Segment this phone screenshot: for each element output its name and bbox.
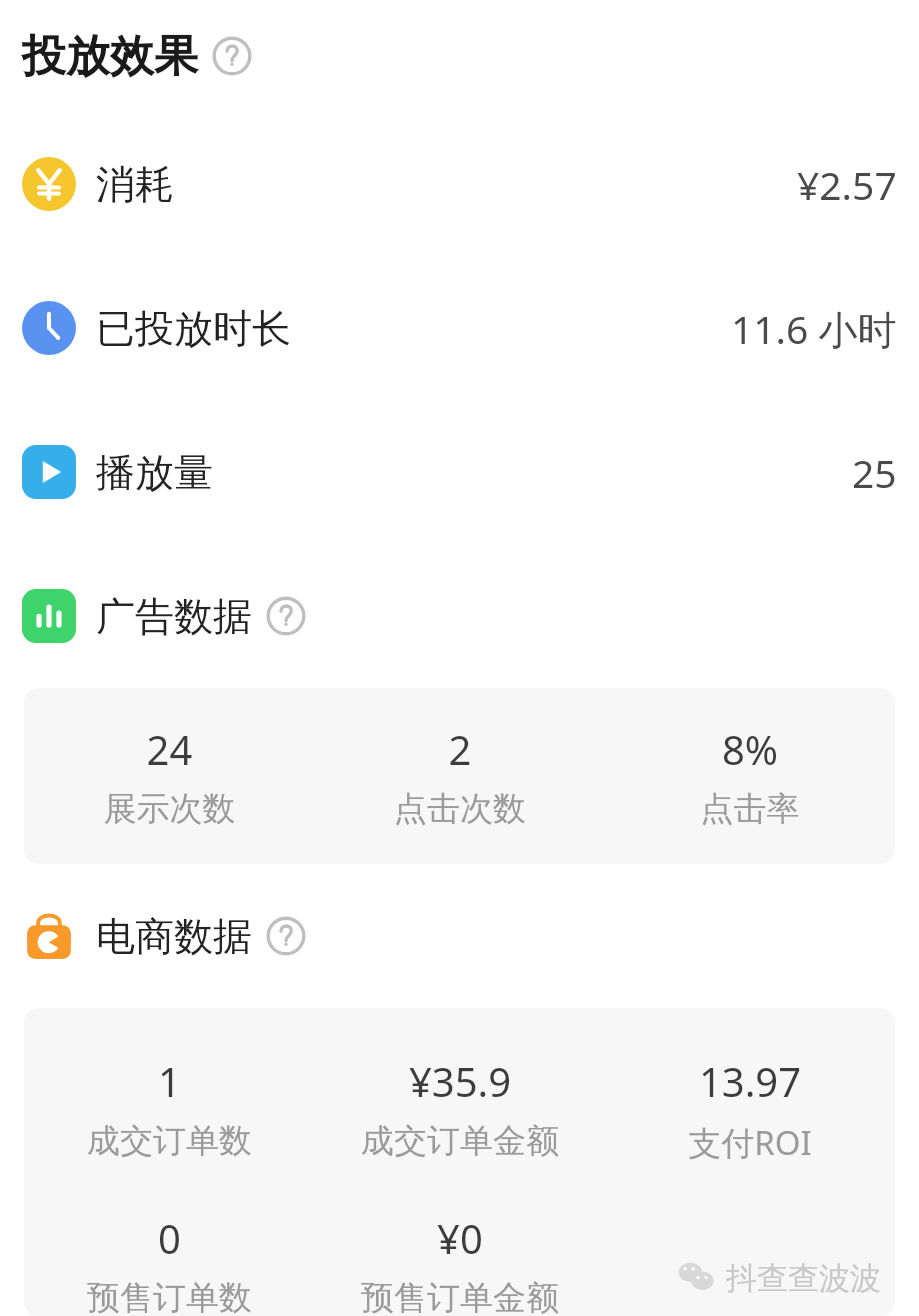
staticText: 24 xyxy=(24,722,315,776)
staticText: 25 xyxy=(852,446,897,499)
staticText: 支付ROI xyxy=(605,1120,895,1165)
staticText: 成交订单数 xyxy=(24,1120,315,1162)
staticText: 点击率 xyxy=(605,788,895,830)
staticText: 预售订单金额 xyxy=(315,1277,605,1316)
staticText: 1 xyxy=(24,1054,315,1108)
staticText: 成交订单金额 xyxy=(315,1120,605,1162)
button[interactable]: 帮助说明 xyxy=(212,36,252,76)
button[interactable]: 电商数据 xyxy=(0,864,919,1008)
staticText: 8% xyxy=(605,722,895,776)
button[interactable]: 帮助说明 xyxy=(266,596,306,636)
button[interactable]: ¥35.9 xyxy=(315,1054,605,1162)
button[interactable]: 已投放时长 xyxy=(0,256,919,400)
button[interactable]: 2 xyxy=(315,722,605,830)
staticText: 广告数据 xyxy=(96,592,252,641)
button[interactable]: 1 xyxy=(24,1054,315,1162)
staticText: 点击次数 xyxy=(315,788,605,830)
button[interactable]: 播放量 xyxy=(0,400,919,544)
button[interactable]: 0 xyxy=(24,1211,315,1316)
staticText: 2 xyxy=(315,722,605,776)
button[interactable]: 帮助说明 xyxy=(266,916,306,956)
staticText: 抖查查波波 xyxy=(726,1259,881,1298)
button[interactable]: 消耗 xyxy=(0,112,919,256)
staticText: ¥0 xyxy=(315,1211,605,1265)
staticText: 预售订单数 xyxy=(24,1277,315,1316)
staticText: ¥2.57 xyxy=(797,158,897,211)
staticText: 播放量 xyxy=(96,448,213,497)
staticText: ¥35.9 xyxy=(315,1054,605,1108)
staticText: 展示次数 xyxy=(24,788,315,830)
staticText: 消耗 xyxy=(96,160,174,209)
staticText: 已投放时长 xyxy=(96,304,291,353)
button[interactable]: ¥0 xyxy=(315,1211,605,1316)
button[interactable]: 广告数据 xyxy=(0,544,919,688)
button[interactable]: 24 xyxy=(24,722,315,830)
staticText: 电商数据 xyxy=(96,912,252,961)
staticText: 0 xyxy=(24,1211,315,1265)
staticText: 11.6 小时 xyxy=(731,302,897,355)
staticText: 13.97 xyxy=(605,1054,895,1108)
staticText: 投放效果 xyxy=(22,29,198,84)
button[interactable]: 13.97 xyxy=(605,1054,895,1165)
button[interactable]: 8% xyxy=(605,722,895,830)
